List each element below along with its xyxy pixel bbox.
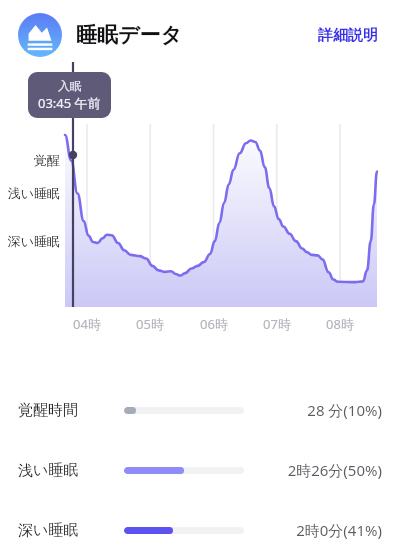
- button[interactable]: Sleep data icon: [18, 13, 62, 57]
- staticText: 睡眠データ: [76, 22, 182, 48]
- staticText: 03:45 午前: [38, 94, 101, 112]
- staticText: 2時0分(41%): [296, 520, 382, 540]
- button[interactable]: 詳細説明: [314, 22, 382, 49]
- button[interactable]: 覚醒時間: [18, 392, 382, 428]
- staticText: 詳細説明: [318, 26, 378, 45]
- button[interactable]: 入眠: [28, 72, 111, 118]
- button[interactable]: 浅い睡眠: [18, 452, 382, 488]
- staticText: 05時: [122, 315, 178, 333]
- staticText: 入眠: [58, 78, 82, 93]
- staticText: 浅い睡眠: [0, 185, 60, 201]
- staticText: 28 分(10%): [307, 400, 382, 420]
- staticText: 深い睡眠: [0, 233, 60, 249]
- staticText: 08時: [312, 315, 368, 333]
- staticText: 覚醒: [0, 152, 60, 168]
- staticText: 04時: [59, 315, 115, 333]
- staticText: 覚醒時間: [18, 401, 124, 420]
- staticText: 06時: [186, 315, 242, 333]
- staticText: 2時26分(50%): [287, 460, 382, 480]
- button[interactable]: 深い睡眠: [18, 512, 382, 548]
- staticText: 浅い睡眠: [18, 461, 124, 480]
- staticText: 07時: [249, 315, 305, 333]
- staticText: 深い睡眠: [18, 521, 124, 540]
